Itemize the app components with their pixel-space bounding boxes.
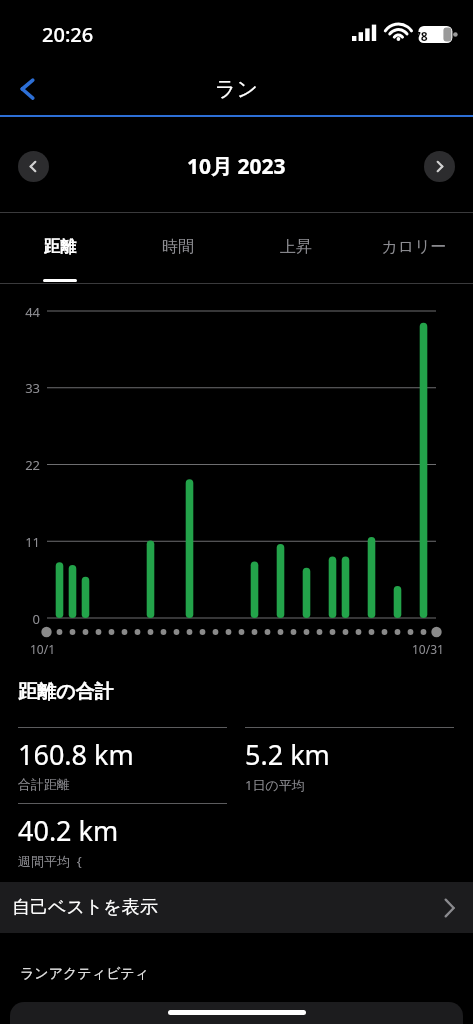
button[interactable]: 時間	[119, 213, 237, 284]
staticText: 自己ベストを表示	[12, 896, 158, 919]
staticText: 33	[25, 379, 40, 397]
staticText: 1日の平均	[245, 776, 305, 794]
staticText: 週間平均 {	[18, 852, 82, 870]
button[interactable]: カロリー	[355, 213, 473, 284]
staticText: 44	[25, 303, 40, 321]
button[interactable]: Back	[6, 67, 50, 111]
button[interactable]: 上昇	[237, 213, 355, 284]
button[interactable]: 自己ベストを表示	[0, 882, 473, 933]
button[interactable]: Next month	[424, 151, 455, 182]
staticText: 10月 2023	[187, 152, 286, 181]
staticText: 22	[25, 456, 40, 474]
staticText: 160.8 km	[18, 736, 134, 773]
staticText: 10/31	[412, 641, 444, 657]
staticText: ランアクティビティ	[20, 965, 149, 983]
staticText: 上昇	[280, 237, 312, 257]
staticText: 78	[414, 28, 428, 44]
button[interactable]: 距離	[0, 213, 119, 284]
staticText: 距離	[44, 237, 76, 257]
staticText: 0	[32, 610, 40, 628]
staticText: 合計距離	[18, 776, 70, 792]
staticText: カロリー	[381, 237, 447, 257]
staticText: 10/1	[30, 641, 56, 657]
staticText: 5.2 km	[245, 736, 330, 773]
staticText: 距離の合計	[18, 680, 114, 704]
staticText: ラン	[215, 76, 258, 102]
button[interactable]: Previous month	[18, 151, 49, 182]
staticText: 11	[25, 533, 40, 551]
staticText: 20:26	[42, 21, 94, 48]
staticText: 40.2 km	[18, 812, 119, 849]
staticText: 時間	[162, 237, 194, 257]
